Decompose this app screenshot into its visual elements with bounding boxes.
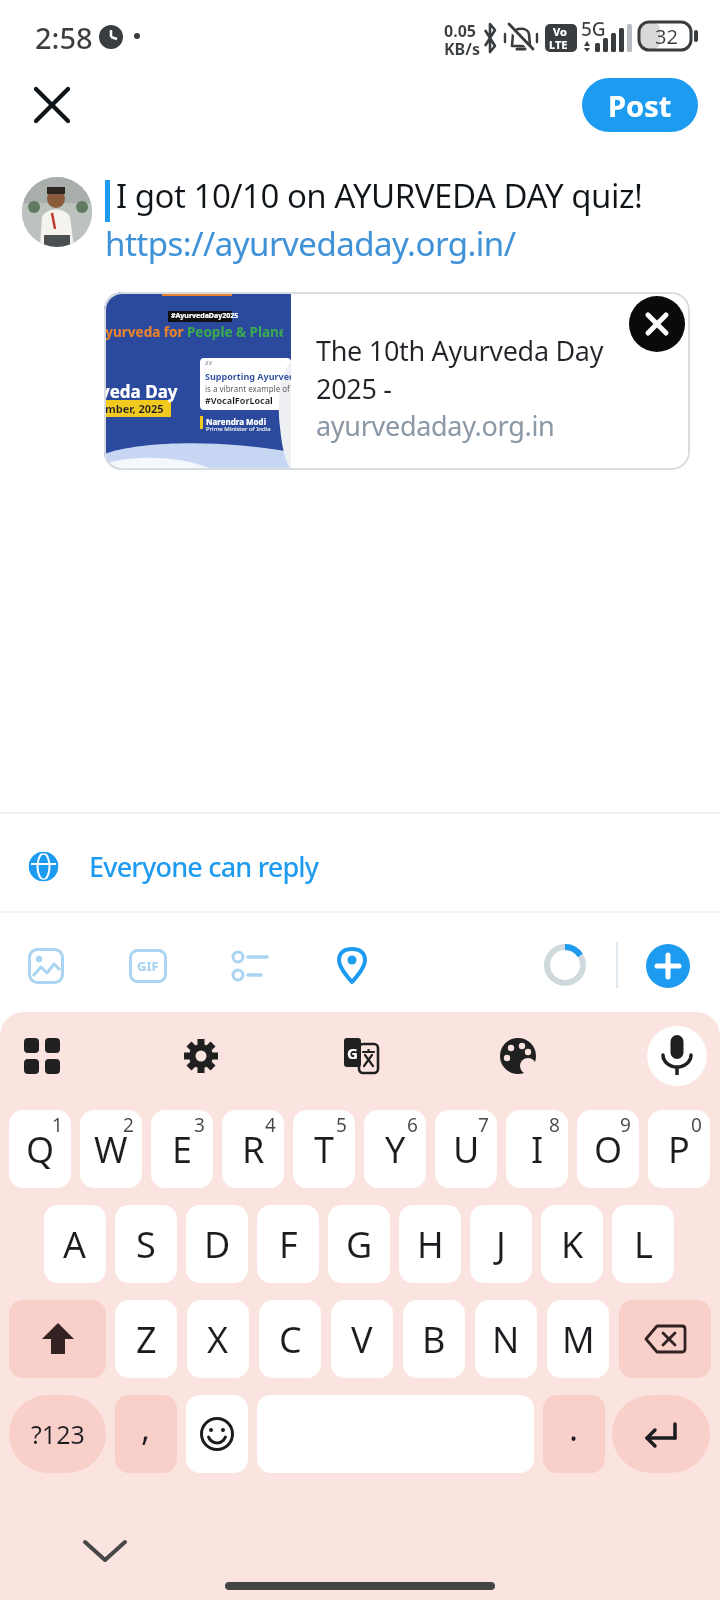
staticText: Everyone can reply [89,848,319,885]
button[interactable]: P [648,1110,710,1188]
staticText: https://ayurvedaday.org.in/ [105,221,516,266]
button[interactable]: S [115,1205,177,1283]
staticText: Z [136,1315,157,1364]
button[interactable]: Z [115,1300,177,1378]
button[interactable]: Post [582,78,698,132]
button[interactable] [612,1395,710,1473]
staticText: LTE [549,37,568,52]
staticText: 4 [265,1112,276,1138]
staticText: H [417,1220,444,1269]
staticText: C [279,1315,302,1364]
button[interactable] [619,1300,711,1378]
button[interactable]: L [612,1205,674,1283]
button[interactable]: J [470,1205,532,1283]
button[interactable] [14,1028,70,1084]
staticText: mber, 2025 [105,401,164,416]
button[interactable]: ?123 [9,1395,106,1473]
button[interactable] [186,1395,248,1473]
button[interactable]: X [187,1300,249,1378]
staticText: #AyurvedaDay2025 [171,311,239,321]
staticText: 3 [194,1112,205,1138]
staticText: 2025 - [316,370,392,407]
staticText: J [496,1220,506,1269]
staticText: Supporting Ayurveda [205,370,291,382]
staticText: 6 [407,1112,418,1138]
button[interactable] [18,938,74,994]
staticText: G [346,1220,373,1269]
button[interactable]: F [257,1205,319,1283]
button[interactable] [324,938,380,994]
staticText: B [422,1315,446,1364]
button[interactable]: K [541,1205,603,1283]
button[interactable]: R [222,1110,284,1188]
staticText: 0.05 [444,20,476,42]
staticText: D [204,1220,231,1269]
staticText: 9 [620,1112,631,1138]
staticText: W [94,1125,128,1174]
button[interactable]: W [80,1110,142,1188]
button[interactable]: U [435,1110,497,1188]
button[interactable]: O [577,1110,639,1188]
staticText: “ [205,356,213,378]
button[interactable] [20,73,84,137]
button[interactable]: M [547,1300,609,1378]
staticText: M [562,1315,595,1364]
staticText: KB/s [444,38,480,60]
button[interactable] [629,296,685,352]
button[interactable]: C [259,1300,321,1378]
button[interactable]: B [403,1300,465,1378]
staticText: 0 [691,1112,702,1138]
staticText: 32 [655,23,678,50]
staticText: 5G [581,16,606,42]
staticText: V [351,1315,373,1364]
button[interactable]: T [293,1110,355,1188]
staticText: 7 [478,1112,489,1138]
staticText: ayurvedaday.org.in [316,407,555,444]
button[interactable]: Everyone can reply [0,817,720,915]
staticText: 1 [52,1112,63,1138]
button[interactable]: D [186,1205,248,1283]
button[interactable] [646,944,690,988]
button[interactable]: G [328,1205,390,1283]
staticText: T [314,1125,335,1174]
staticText: ?123 [31,1417,85,1451]
button[interactable]: Y [364,1110,426,1188]
staticText: 2:58 [35,18,93,57]
button[interactable]: GIF [120,938,176,994]
button[interactable]: G [332,1028,388,1084]
staticText: Prime Minister of India [206,425,271,433]
staticText: Ayurveda for People & Planet [104,323,283,341]
button[interactable]: . [543,1395,605,1473]
staticText: The 10th Ayurveda Day [316,332,604,369]
staticText: Vo [553,24,567,39]
button[interactable] [9,1300,106,1378]
button[interactable] [490,1028,546,1084]
button[interactable] [222,938,278,994]
button[interactable]: N [475,1300,537,1378]
staticText: 5 [336,1112,347,1138]
staticText: S [136,1220,156,1269]
button[interactable]: V [331,1300,393,1378]
button[interactable]: I [506,1110,568,1188]
staticText: I got 10/10 on AYURVEDA DAY quiz! [116,173,643,218]
staticText: O [594,1125,623,1174]
staticText: Post [608,86,672,125]
staticText: veda Day [104,380,178,403]
button[interactable] [75,1527,135,1577]
staticText: L [634,1220,653,1269]
button[interactable]: A [44,1205,106,1283]
staticText: P [668,1125,690,1174]
button[interactable]: #AyurvedaDay2025 [104,292,690,470]
button[interactable] [647,1026,707,1086]
staticText: #VocalForLocal [205,394,273,406]
staticText: A [63,1220,87,1269]
staticText: E [172,1125,193,1174]
button[interactable]: , [115,1395,177,1473]
button[interactable] [173,1028,229,1084]
staticText: U [453,1125,480,1174]
button[interactable]: E [151,1110,213,1188]
button[interactable]: Q [9,1110,71,1188]
button[interactable]: H [399,1205,461,1283]
staticText: 8 [549,1112,560,1138]
